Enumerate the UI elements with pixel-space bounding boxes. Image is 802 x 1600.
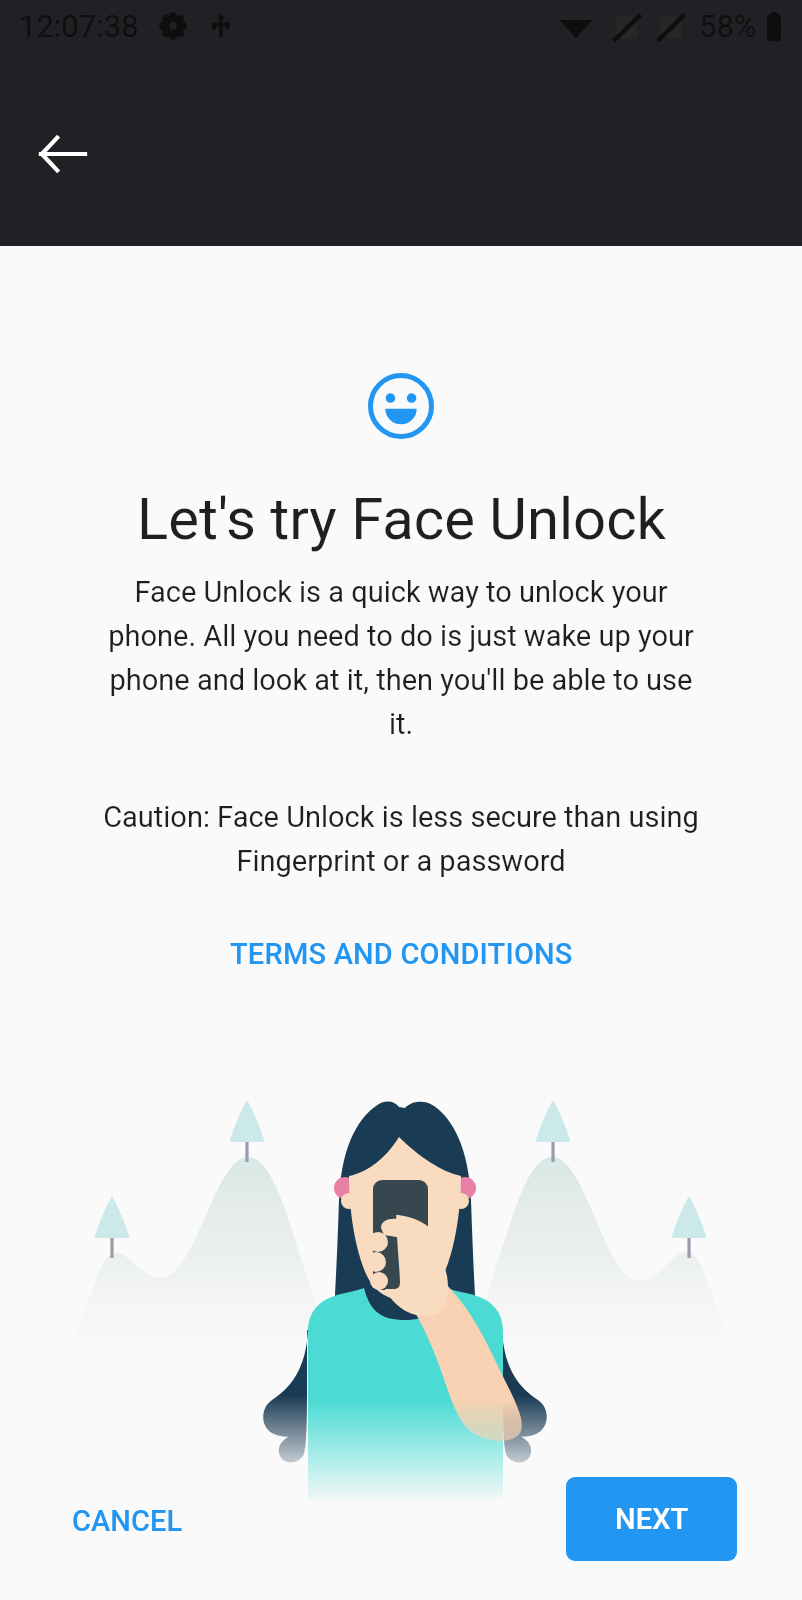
staticText: Let's try Face Unlock xyxy=(137,485,666,553)
button[interactable]: TERMS AND CONDITIONS xyxy=(220,933,583,975)
button[interactable]: NEXT xyxy=(566,1477,737,1561)
staticText: TERMS AND CONDITIONS xyxy=(230,937,573,971)
button[interactable]: CANCEL xyxy=(60,1496,195,1546)
staticText: CANCEL xyxy=(72,1504,183,1538)
button[interactable]: Back xyxy=(14,106,110,202)
staticText: Caution: Face Unlock is less secure than… xyxy=(91,800,711,878)
staticText: 58% xyxy=(699,8,757,44)
staticText: 12:07:38 xyxy=(19,8,139,44)
staticText: NEXT xyxy=(615,1502,689,1536)
staticText: Face Unlock is a quick way to unlock you… xyxy=(101,575,701,741)
